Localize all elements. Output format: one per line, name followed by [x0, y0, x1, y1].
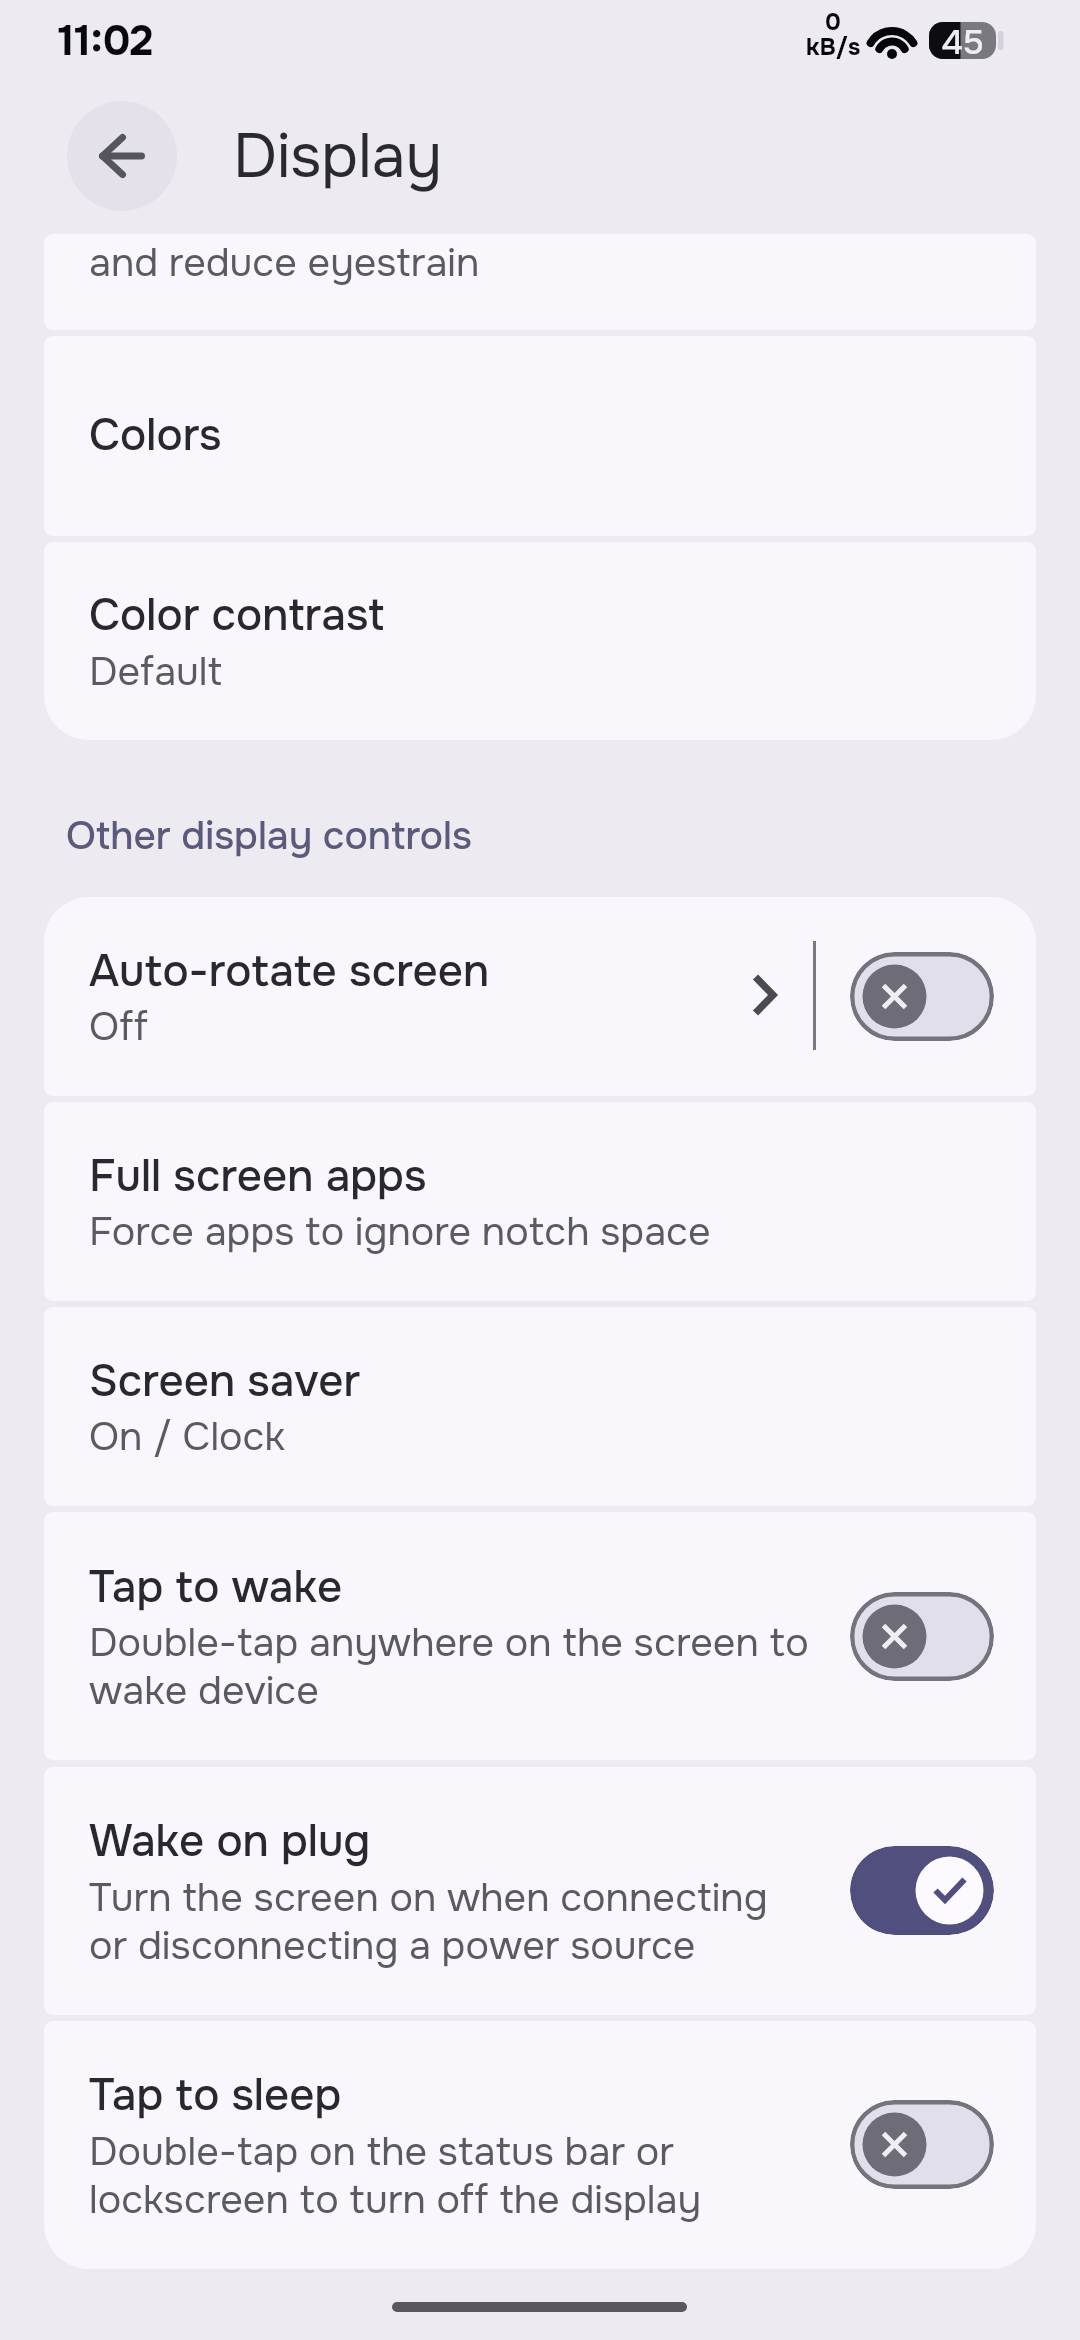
button[interactable]: Color contrast: [44, 542, 1036, 740]
staticText: Full screen apps: [89, 1151, 989, 1203]
button[interactable]: Colors: [44, 336, 1036, 536]
staticText: On / Clock: [89, 1413, 989, 1461]
button[interactable]: Switch off: [850, 952, 994, 1041]
button[interactable]: Full screen apps: [44, 1102, 1036, 1301]
staticText: Turn the screen on when connecting or di…: [89, 1874, 849, 1970]
staticText: 0: [825, 11, 841, 36]
staticText: Display: [233, 118, 442, 196]
button[interactable]: Back: [67, 101, 177, 211]
button[interactable]: Tap to wake: [44, 1512, 1036, 1760]
button[interactable]: Switch on: [850, 1846, 994, 1935]
button[interactable]: Wake on plug: [44, 1767, 1036, 2015]
staticText: Screen saver: [89, 1356, 989, 1408]
staticText: Colors: [89, 410, 989, 462]
staticText: Tap to sleep: [89, 2070, 989, 2122]
staticText: kB/s: [806, 36, 861, 61]
staticText: 45: [929, 21, 996, 64]
button[interactable]: Switch off: [850, 1592, 994, 1681]
staticText: Other display controls: [66, 811, 472, 861]
button[interactable]: and reduce eyestrain: [44, 234, 1036, 330]
staticText: Wake on plug: [89, 1816, 989, 1868]
button[interactable]: Tap to sleep: [44, 2021, 1036, 2269]
staticText: Tap to wake: [89, 1562, 989, 1614]
staticText: Auto-rotate screen: [89, 946, 989, 998]
button[interactable]: Auto-rotate screen: [44, 897, 1036, 1096]
staticText: Color contrast: [89, 590, 989, 642]
staticText: Off: [89, 1003, 989, 1051]
staticText: Double-tap on the status bar or lockscre…: [89, 2128, 849, 2224]
staticText: and reduce eyestrain: [89, 239, 989, 287]
staticText: Default: [89, 648, 989, 696]
staticText: 11:02: [58, 14, 154, 68]
button[interactable]: Switch off: [850, 2100, 994, 2189]
staticText: Force apps to ignore notch space: [89, 1208, 989, 1256]
button[interactable]: Screen saver: [44, 1307, 1036, 1506]
staticText: Double-tap anywhere on the screen to wak…: [89, 1619, 849, 1715]
other: Auto-rotate settings: [748, 975, 780, 1019]
